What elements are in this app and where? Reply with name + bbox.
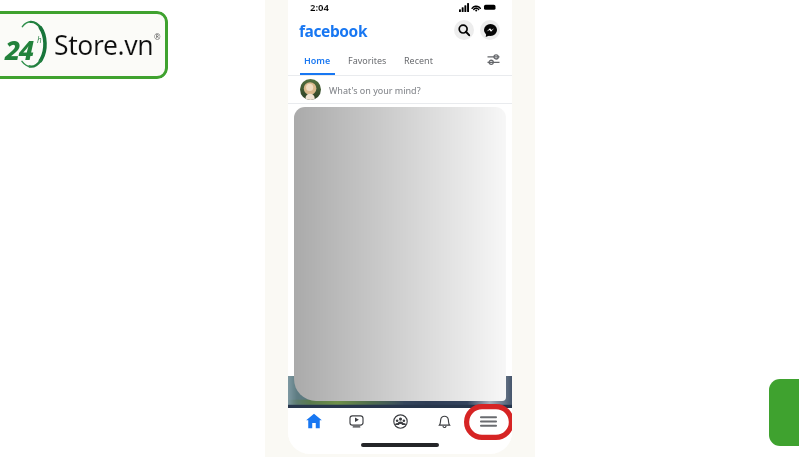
staticText: h: [37, 34, 42, 45]
staticText: Favorites: [348, 54, 387, 66]
button[interactable]: Video: [335, 408, 378, 434]
button[interactable]: What's on your mind?: [329, 76, 512, 103]
staticText: facebook: [299, 20, 368, 41]
button[interactable]: Messenger: [480, 20, 500, 40]
button[interactable]: Feed preferences: [487, 53, 500, 66]
staticText: Home: [304, 54, 331, 66]
button[interactable]: Search: [454, 20, 474, 40]
button[interactable]: Home feed: [292, 408, 335, 434]
button[interactable]: Groups: [378, 408, 422, 434]
button[interactable]: Your profile picture: [300, 79, 321, 100]
button[interactable]: Menu: [475, 410, 501, 432]
staticText: What's on your mind?: [329, 84, 421, 96]
staticText: 24: [5, 31, 33, 68]
staticText: 2:04: [310, 1, 329, 14]
button[interactable]: Home: [304, 54, 331, 66]
button[interactable]: Recent: [404, 54, 433, 66]
staticText: ®: [154, 31, 161, 42]
button[interactable]: Notifications: [422, 408, 466, 434]
staticText: Recent: [404, 54, 433, 66]
button[interactable]: Favorites: [348, 54, 387, 66]
staticText: Store.vn: [54, 27, 154, 63]
